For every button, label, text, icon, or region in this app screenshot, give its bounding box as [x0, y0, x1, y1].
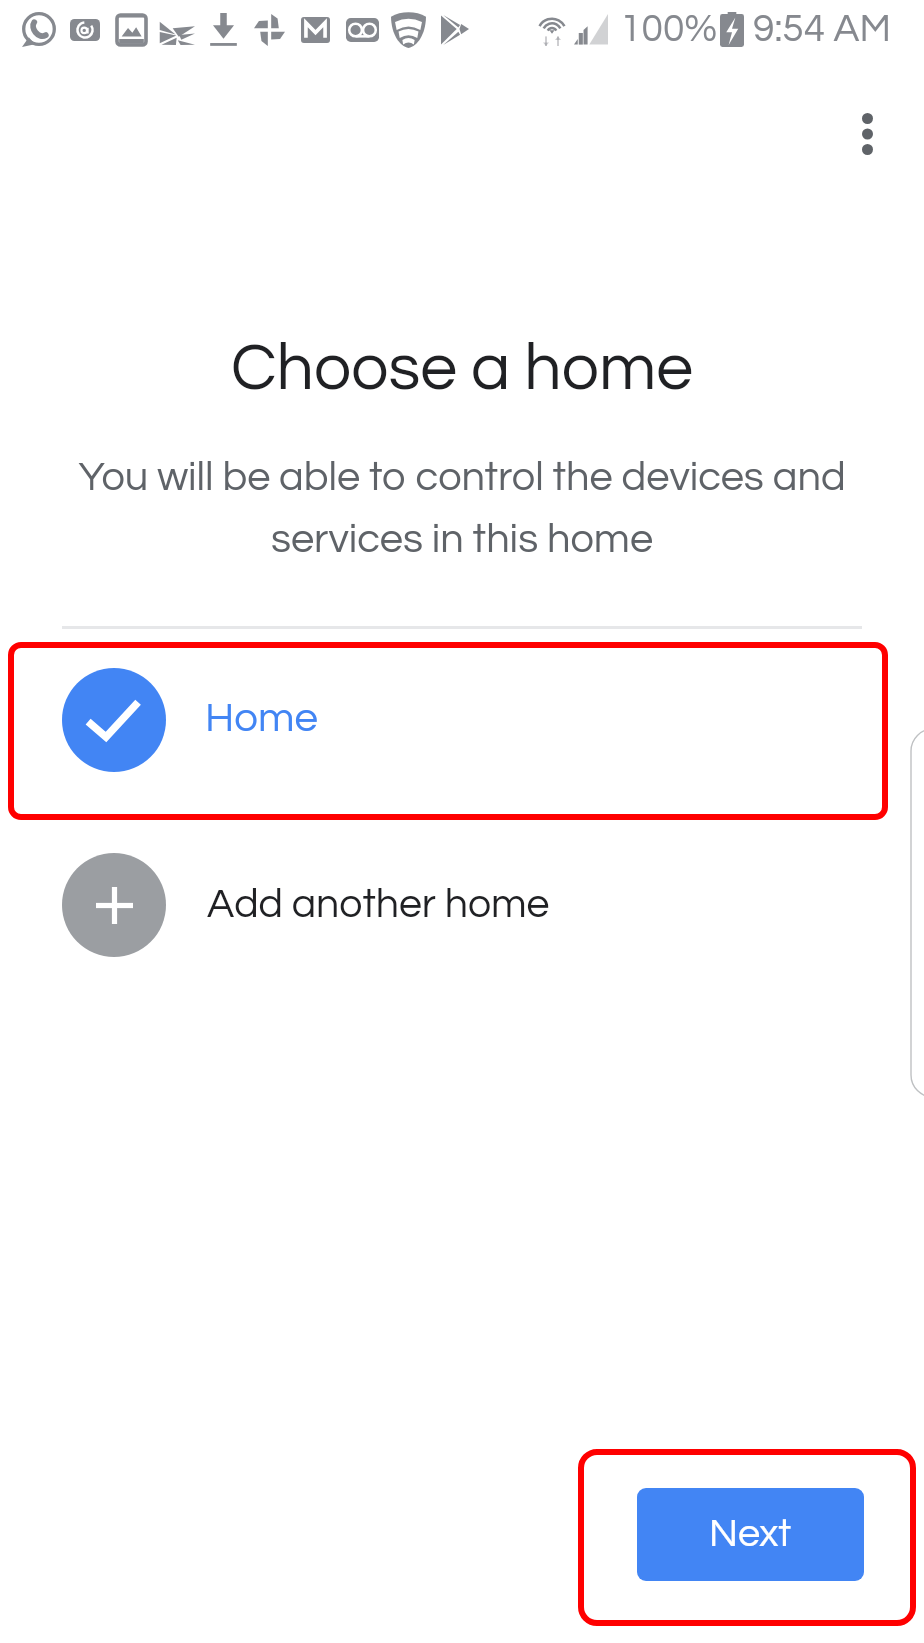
- staticText: Choose a home: [0, 335, 924, 403]
- button[interactable]: Add another home: [0, 816, 924, 994]
- staticText: You will be able to control the devices …: [64, 456, 860, 561]
- button[interactable]: Next: [637, 1488, 864, 1581]
- staticText: Add another home: [207, 883, 550, 925]
- staticText: 9:54 AM: [753, 9, 891, 49]
- staticText: Home: [205, 697, 318, 740]
- staticText: 100%: [620, 9, 718, 49]
- button[interactable]: More options: [823, 89, 912, 178]
- button[interactable]: Home: [0, 631, 924, 809]
- staticText: Next: [709, 1514, 792, 1555]
